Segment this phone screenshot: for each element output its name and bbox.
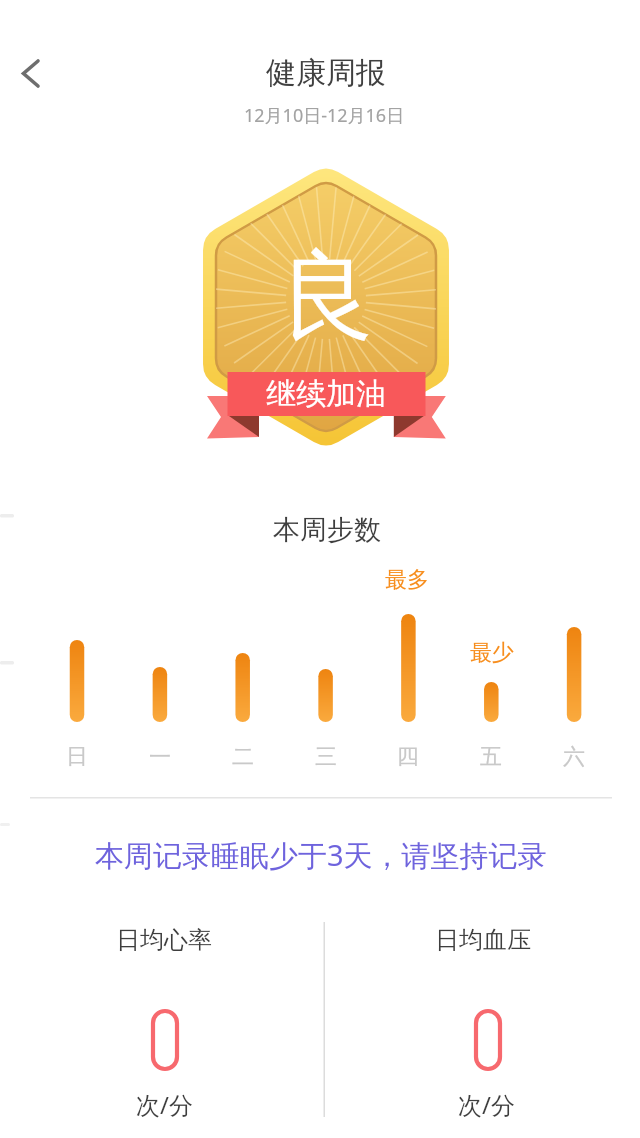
staticText: 日均心率 xyxy=(116,925,212,955)
staticText: 一 xyxy=(149,743,171,771)
staticText: 日均血压 xyxy=(435,925,531,955)
staticText: 良 xyxy=(278,236,375,358)
button[interactable] xyxy=(6,46,58,98)
staticText: 三 xyxy=(315,743,337,771)
staticText: 日 xyxy=(66,743,88,771)
staticText: 六 xyxy=(563,743,585,771)
staticText: 四 xyxy=(397,743,419,771)
staticText: 最少 xyxy=(470,639,514,667)
staticText: 继续加油 xyxy=(266,375,386,413)
staticText: 健康周报 xyxy=(266,54,386,92)
staticText: 次/分 xyxy=(136,1088,193,1121)
staticText: 12月10日-12月16日 xyxy=(244,103,405,128)
staticText: 最多 xyxy=(385,566,429,594)
staticText: 次/分 xyxy=(458,1088,515,1121)
staticText: 本周步数 xyxy=(273,513,381,547)
staticText: 五 xyxy=(480,743,502,771)
staticText: 本周记录睡眠少于3天，请坚持记录 xyxy=(95,835,547,875)
staticText: 二 xyxy=(232,743,254,771)
